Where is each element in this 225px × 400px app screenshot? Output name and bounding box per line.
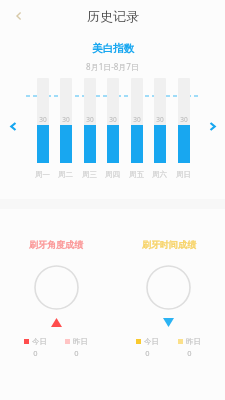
- staticText: 0: [74, 348, 79, 358]
- staticText: 30: [109, 115, 117, 124]
- staticText: 周三: [82, 170, 97, 179]
- staticText: 30: [133, 115, 141, 124]
- staticText: 历史记录: [87, 8, 139, 24]
- staticText: 刷牙角度成绩: [29, 239, 83, 250]
- staticText: 美白指数: [92, 42, 134, 55]
- staticText: 周一: [35, 170, 50, 179]
- staticText: 30: [39, 115, 47, 124]
- button[interactable]: Next week: [199, 78, 225, 191]
- staticText: 周六: [152, 170, 167, 179]
- staticText: 周五: [129, 170, 144, 179]
- staticText: 今日: [144, 337, 159, 346]
- staticText: 周日: [176, 170, 191, 179]
- staticText: 8月1日-8月7日: [86, 61, 139, 72]
- staticText: 0: [145, 348, 150, 358]
- staticText: 30: [156, 115, 164, 124]
- staticText: 0: [187, 348, 192, 358]
- button[interactable]: 刷牙角度成绩: [0, 239, 112, 358]
- staticText: 周四: [105, 170, 120, 179]
- staticText: 30: [180, 115, 188, 124]
- button[interactable]: Previous week: [0, 78, 26, 191]
- button[interactable]: 刷牙时间成绩: [112, 239, 225, 358]
- staticText: 昨日: [73, 337, 88, 346]
- staticText: 30: [62, 115, 70, 124]
- staticText: 今日: [32, 337, 47, 346]
- staticText: 刷牙时间成绩: [142, 239, 196, 250]
- button[interactable]: Back: [6, 3, 32, 29]
- staticText: 0: [33, 348, 38, 358]
- staticText: 30: [86, 115, 94, 124]
- staticText: 昨日: [186, 337, 201, 346]
- staticText: 周二: [58, 170, 73, 179]
